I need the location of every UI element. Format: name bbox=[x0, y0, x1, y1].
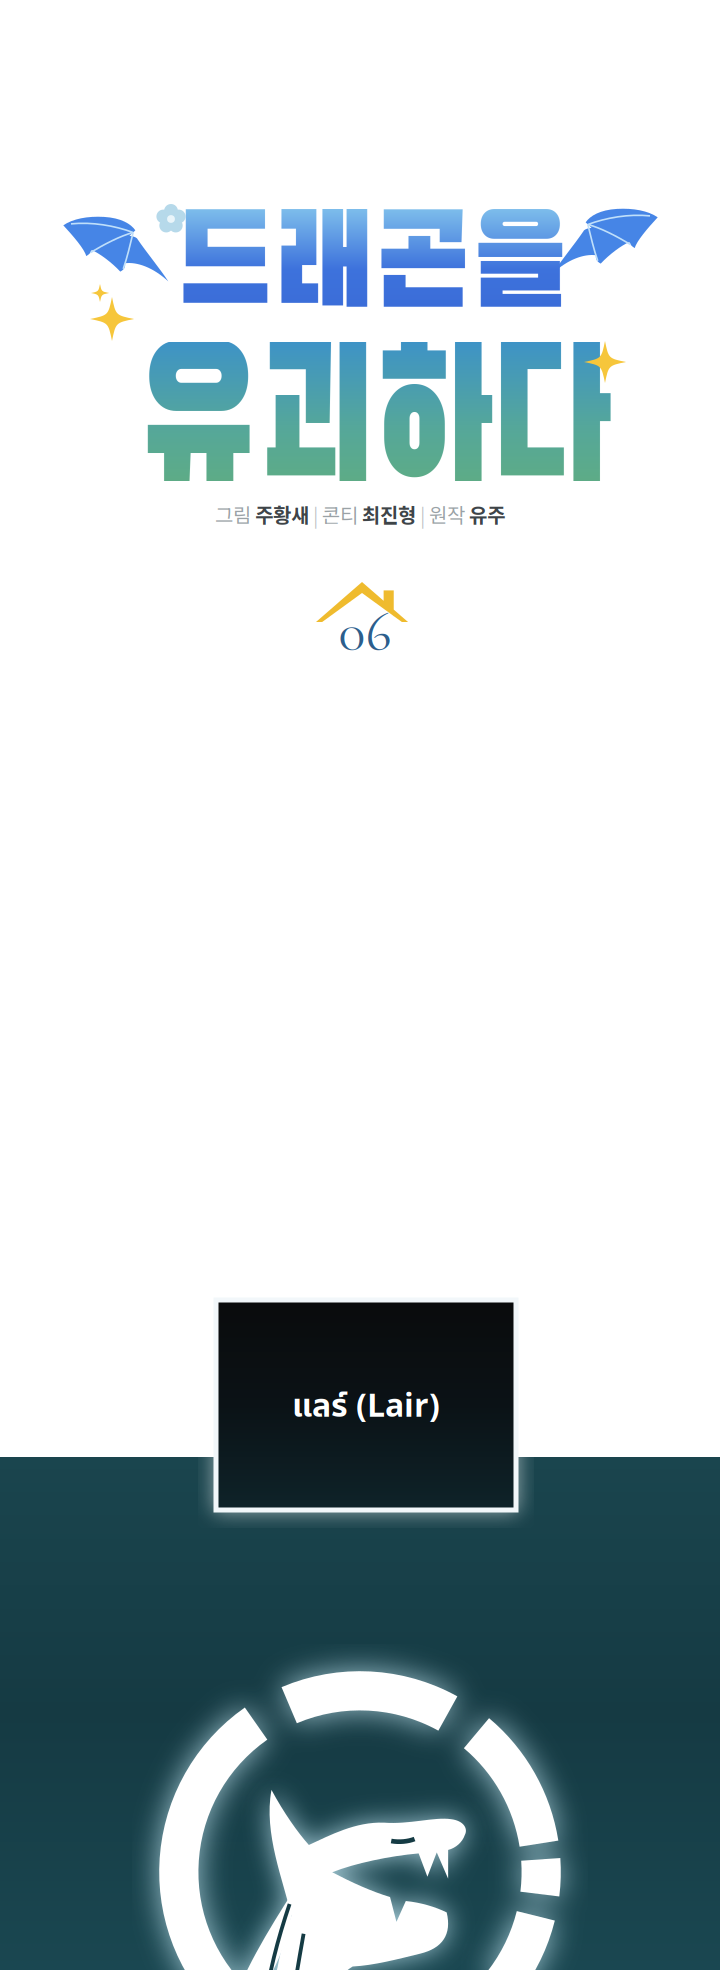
staticText: 원작 bbox=[429, 499, 469, 528]
staticText: 주황새 bbox=[255, 499, 309, 528]
staticText: แลร์ (Lair) bbox=[292, 1383, 440, 1431]
staticText: 06 bbox=[338, 598, 391, 666]
staticText: 그림 bbox=[215, 499, 255, 528]
staticText: 콘티 bbox=[322, 499, 362, 528]
staticText: 최진형 bbox=[362, 499, 416, 528]
staticText: 유주 bbox=[469, 499, 505, 528]
staticText: | bbox=[309, 499, 322, 528]
staticText: | bbox=[416, 499, 429, 528]
